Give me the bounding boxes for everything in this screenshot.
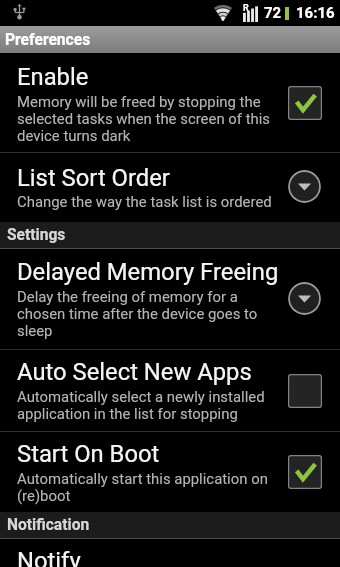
staticText: Notification <box>7 516 90 534</box>
staticText: 16:16 <box>296 4 335 22</box>
button[interactable]: Enabled checkbox <box>288 86 322 120</box>
staticText: Delay the freeing of memory for a chosen… <box>17 288 287 339</box>
button[interactable]: Notify <box>0 539 340 567</box>
button[interactable]: Enable <box>0 53 340 152</box>
staticText: R <box>243 3 249 14</box>
button[interactable]: List Sort Order <box>0 153 340 222</box>
staticText: Auto Select New Apps <box>17 358 252 386</box>
staticText: Automatically select a newly installed a… <box>17 388 287 422</box>
staticText: Start On Boot <box>17 440 160 468</box>
staticText: Change the way the task list is ordered <box>17 193 272 210</box>
button[interactable]: Preferences <box>0 26 340 53</box>
button[interactable]: Open options list <box>288 282 321 315</box>
button[interactable]: Delayed Memory Freeing <box>0 249 340 349</box>
staticText: Preferences <box>5 31 91 49</box>
staticText: List Sort Order <box>17 164 170 192</box>
staticText: Notify <box>17 547 81 567</box>
button[interactable]: Disabled checkbox <box>288 374 322 408</box>
button[interactable]: Enabled checkbox <box>288 455 322 489</box>
staticText: Automatically start this application on … <box>17 470 287 504</box>
staticText: Settings <box>7 226 66 244</box>
staticText: Delayed Memory Freeing <box>17 258 279 286</box>
button[interactable]: Open options list <box>288 170 321 203</box>
other: USB connected <box>14 4 25 19</box>
button[interactable]: Start On Boot <box>0 432 340 512</box>
staticText: Enable <box>17 63 89 91</box>
button[interactable]: Auto Select New Apps <box>0 350 340 431</box>
staticText: Memory will be freed by stopping the sel… <box>17 93 287 144</box>
staticText: 72 <box>264 4 282 22</box>
